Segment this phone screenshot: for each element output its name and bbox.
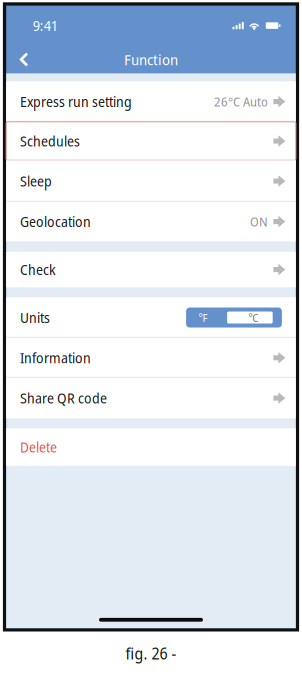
staticText: Function (124, 49, 178, 70)
button[interactable]: Information (6, 338, 296, 378)
button[interactable]: Geolocation (6, 202, 296, 241)
button[interactable]: Express run setting (6, 81, 296, 122)
button[interactable]: Back (6, 46, 47, 72)
staticText: Schedules (20, 131, 80, 151)
staticText: Check (20, 260, 56, 279)
button[interactable]: Check (6, 252, 296, 287)
staticText: fig. 26 - (125, 643, 176, 664)
staticText: Sleep (20, 171, 52, 191)
staticText: ON (250, 213, 268, 230)
button[interactable]: Schedules (6, 122, 296, 160)
button[interactable]: °C (227, 312, 273, 324)
staticText: Delete (20, 437, 57, 457)
staticText: Share QR code (20, 388, 107, 408)
button[interactable]: °F (186, 308, 220, 328)
staticText: 9:41 (33, 16, 58, 35)
button[interactable]: Share QR code (6, 378, 296, 418)
staticText: Geolocation (20, 212, 91, 231)
staticText: Express run setting (20, 92, 132, 111)
staticText: Units (20, 308, 50, 327)
staticText: °F (198, 310, 207, 325)
staticText: °C (248, 310, 258, 325)
staticText: 26°C Auto (214, 93, 268, 110)
button[interactable]: Sleep (6, 160, 296, 202)
button[interactable]: Delete (6, 428, 296, 466)
staticText: Information (20, 348, 91, 367)
